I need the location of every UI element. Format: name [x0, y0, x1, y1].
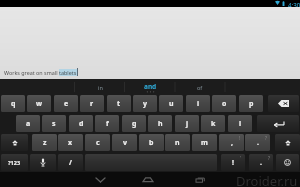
staticText: h — [158, 119, 163, 129]
staticText: tablets — [59, 69, 77, 76]
staticText: n — [175, 138, 180, 148]
button[interactable]: q — [1, 95, 25, 112]
button[interactable]: s — [42, 115, 66, 132]
button[interactable]: d — [69, 115, 93, 132]
staticText: f — [106, 119, 109, 129]
staticText: q — [11, 99, 16, 109]
staticText: p — [249, 99, 254, 109]
button[interactable]: in — [75, 79, 125, 95]
button[interactable]: i — [186, 95, 210, 112]
button[interactable]: j — [175, 115, 199, 132]
button[interactable]: . — [249, 154, 273, 171]
staticText: . — [257, 138, 259, 148]
button[interactable]: t — [107, 95, 131, 112]
button[interactable]: of — [175, 79, 225, 95]
button[interactable]: Voice input — [30, 154, 56, 171]
button[interactable]: f — [95, 115, 119, 132]
button[interactable]: u — [159, 95, 183, 112]
staticText: Works great on small — [4, 69, 59, 76]
staticText: t — [117, 99, 121, 109]
button[interactable]: r — [80, 95, 104, 112]
staticText: of — [197, 84, 203, 91]
button[interactable]: p — [239, 95, 263, 112]
button[interactable]: Shift — [1, 134, 28, 151]
staticText: r — [90, 99, 94, 109]
staticText: w — [36, 99, 42, 109]
staticText: . — [260, 158, 262, 168]
button[interactable]: n — [165, 134, 190, 151]
button[interactable]: x — [58, 134, 83, 151]
staticText: ! — [232, 158, 234, 168]
button[interactable]: z — [32, 134, 57, 151]
staticText: x — [68, 138, 73, 148]
button[interactable]: Enter — [257, 115, 299, 132]
staticText: v — [123, 138, 127, 148]
button[interactable]: , — [219, 134, 244, 151]
button[interactable]: Shift — [275, 134, 300, 151]
button[interactable]: y — [133, 95, 157, 112]
button[interactable]: / — [58, 154, 83, 171]
staticText: ?123 — [8, 159, 21, 166]
staticText: u — [169, 99, 174, 109]
button[interactable]: h — [148, 115, 172, 132]
button[interactable]: Home — [132, 172, 164, 187]
staticText: s — [52, 119, 56, 129]
staticText: e — [64, 99, 69, 109]
staticText: j — [186, 119, 189, 129]
staticText: m — [201, 138, 208, 148]
staticText: , — [231, 138, 233, 148]
staticText: d — [79, 119, 84, 129]
button[interactable]: g — [122, 115, 146, 132]
button[interactable]: m — [192, 134, 217, 151]
staticText: y — [143, 99, 147, 109]
button[interactable]: b — [139, 134, 164, 151]
button[interactable]: Backspace — [268, 95, 299, 112]
staticText: 4:30 — [288, 1, 300, 8]
staticText: i — [197, 99, 200, 109]
button[interactable]: v — [112, 134, 137, 151]
button[interactable]: and — [125, 79, 175, 95]
button[interactable]: k — [201, 115, 225, 132]
button[interactable]: Emoji — [276, 154, 299, 171]
button[interactable]: c — [85, 134, 110, 151]
staticText: l — [239, 119, 242, 129]
staticText: ? — [268, 155, 270, 161]
staticText: ? — [265, 135, 267, 141]
button[interactable]: Symbols — [1, 154, 28, 171]
staticText: ! — [239, 135, 241, 141]
button[interactable]: w — [27, 95, 51, 112]
staticText: in — [98, 84, 103, 91]
button[interactable]: Recent apps — [184, 172, 216, 187]
staticText: Droider.ru — [236, 172, 298, 186]
staticText: ' — [240, 155, 242, 161]
button[interactable]: Hide keyboard — [84, 172, 116, 187]
staticText: o — [222, 99, 227, 109]
button[interactable]: . — [245, 134, 270, 151]
button[interactable]: a — [16, 115, 40, 132]
staticText: and — [144, 82, 157, 91]
staticText: g — [132, 119, 137, 129]
button[interactable]: e — [54, 95, 78, 112]
staticText: / — [69, 158, 72, 168]
staticText: c — [96, 138, 100, 148]
staticText: b — [149, 138, 154, 148]
staticText: a — [26, 119, 31, 129]
button[interactable]: l — [228, 115, 252, 132]
button[interactable]: Space — [85, 154, 217, 171]
staticText: z — [43, 138, 47, 148]
button[interactable]: ! — [221, 154, 245, 171]
button[interactable]: o — [212, 95, 236, 112]
staticText: k — [211, 119, 216, 129]
